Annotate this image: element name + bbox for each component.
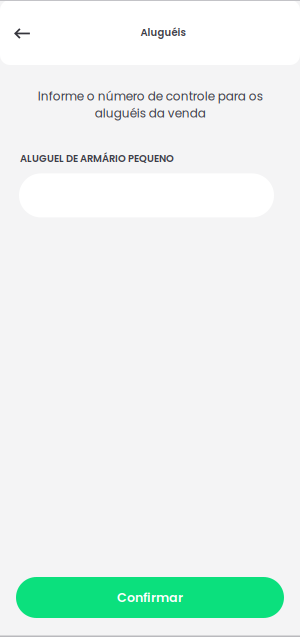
button[interactable]: Back xyxy=(6,14,42,50)
staticText: Informe o número de controle para os alu… xyxy=(37,88,262,122)
staticText: Aluguéis xyxy=(140,25,185,39)
button[interactable]: Confirmar xyxy=(16,577,284,618)
staticText: ALUGUEL DE ARMÁRIO PEQUENO xyxy=(20,152,174,165)
staticText: Confirmar xyxy=(117,589,183,606)
